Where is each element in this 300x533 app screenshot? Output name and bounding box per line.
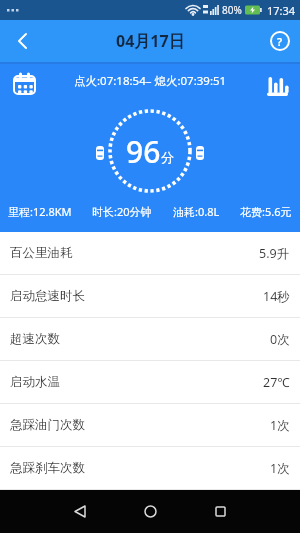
button[interactable]: ? — [270, 31, 290, 51]
staticText: 96 — [126, 131, 161, 172]
button[interactable] — [0, 20, 44, 62]
staticText: 急踩刹车次数 — [10, 460, 85, 476]
staticText: 分 — [161, 149, 174, 165]
staticText: 启动水温 — [10, 374, 60, 390]
staticText: 急踩油门次数 — [10, 417, 85, 433]
button[interactable] — [267, 77, 288, 96]
staticText: 1次 — [270, 460, 290, 477]
button[interactable] — [60, 490, 100, 533]
staticText: 14秒 — [263, 288, 290, 305]
staticText: 0次 — [270, 331, 290, 348]
staticText: 80% — [222, 3, 242, 17]
button[interactable]: 百公里油耗 — [0, 232, 300, 275]
staticText: 花费:5.6元 — [240, 204, 292, 219]
button[interactable] — [130, 490, 170, 533]
button[interactable]: 急踩刹车次数 — [0, 447, 300, 490]
staticText: 17:34 — [267, 3, 296, 18]
staticText: 启动怠速时长 — [10, 288, 85, 304]
button[interactable]: 超速次数 — [0, 318, 300, 361]
staticText: 时长:20分钟 — [92, 204, 152, 219]
staticText: 点火:07:18:54– 熄火:07:39:51 — [74, 73, 227, 89]
staticText: 27℃ — [263, 374, 290, 391]
staticText: 百公里油耗 — [10, 245, 73, 261]
staticText: 里程:12.8KM — [8, 204, 72, 219]
staticText: 04月17日 — [116, 30, 185, 52]
button[interactable] — [13, 72, 36, 95]
button[interactable]: 启动怠速时长 — [0, 275, 300, 318]
staticText: ? — [277, 34, 283, 49]
staticText: 1次 — [270, 417, 290, 434]
staticText: 油耗:0.8L — [173, 204, 220, 219]
button[interactable]: 启动水温 — [0, 361, 300, 404]
button[interactable]: 急踩油门次数 — [0, 404, 300, 447]
staticText: 5.9升 — [259, 245, 290, 262]
button[interactable] — [200, 490, 240, 533]
staticText: 超速次数 — [10, 331, 60, 347]
